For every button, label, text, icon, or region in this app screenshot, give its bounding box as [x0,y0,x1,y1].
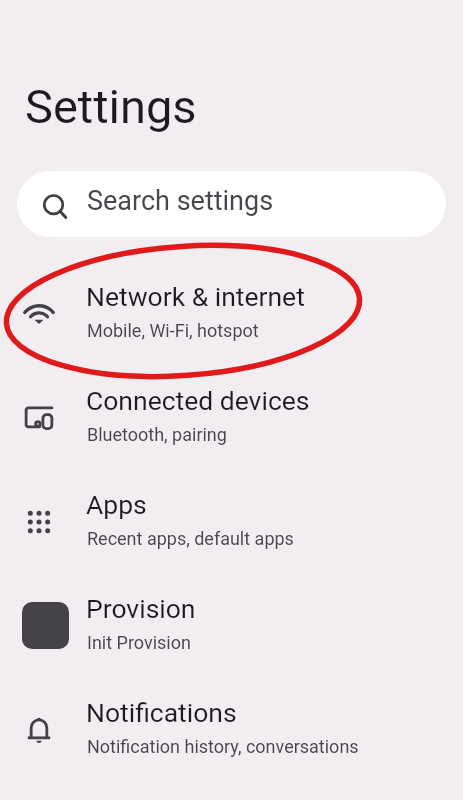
staticText: Mobile, Wi-Fi, hotspot [87,320,259,341]
staticText: Network & internet [86,281,305,312]
button[interactable]: Provision [0,572,463,676]
staticText: Init Provision [87,632,191,653]
staticText: Recent apps, default apps [87,528,294,549]
staticText: Notification history, conversations [87,736,359,757]
staticText: Apps [86,489,147,520]
staticText: Provision [86,593,196,624]
button[interactable]: Apps [0,468,463,572]
staticText: Connected devices [86,385,310,416]
staticText: Notifications [86,697,237,728]
staticText: Bluetooth, pairing [87,424,227,445]
staticText: Search settings [87,185,274,217]
button[interactable]: Search settings [17,171,446,237]
staticText: Settings [25,79,197,134]
button[interactable]: Network & internet [0,260,463,364]
button[interactable]: Connected devices [0,364,463,468]
button[interactable]: Notifications [0,676,463,780]
